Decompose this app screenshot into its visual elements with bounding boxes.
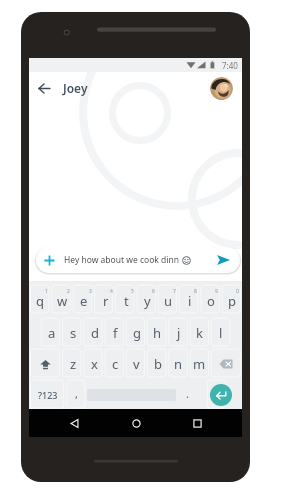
button[interactable]: Shift (29, 349, 62, 379)
button[interactable]: Recent apps (181, 409, 213, 437)
staticText: w (57, 292, 68, 310)
staticText: . (186, 386, 189, 401)
staticText: 7:40 (222, 60, 238, 71)
button[interactable]: l (210, 318, 231, 348)
staticText: y (144, 292, 151, 310)
button[interactable]: q (29, 285, 51, 315)
staticText: 1 (45, 288, 48, 295)
staticText: c (112, 355, 119, 373)
staticText: m (193, 355, 206, 373)
button[interactable]: Enter (210, 384, 232, 406)
button[interactable]: e (73, 285, 95, 315)
staticText: z (70, 355, 77, 373)
staticText: k (196, 324, 203, 342)
staticText: d (91, 324, 99, 342)
staticText: e (80, 292, 88, 310)
button[interactable]: k (189, 318, 210, 348)
staticText: ?123 (38, 389, 58, 401)
button[interactable]: n (168, 349, 189, 379)
staticText: , (75, 386, 78, 401)
staticText: s (70, 324, 77, 342)
button[interactable]: v (126, 349, 147, 379)
button[interactable]: z (62, 349, 84, 379)
button[interactable]: Backspace (210, 349, 242, 379)
staticText: q (36, 292, 44, 310)
staticText: o (207, 292, 215, 310)
button[interactable]: g (126, 318, 147, 348)
staticText: u (164, 292, 173, 310)
button[interactable]: y (137, 285, 158, 315)
staticText: 7 (173, 288, 176, 295)
staticText: 6 (152, 288, 155, 295)
staticText: f (113, 324, 118, 342)
staticText: 2 (67, 288, 70, 295)
button[interactable]: , (66, 380, 87, 410)
button[interactable]: Send (214, 251, 232, 269)
staticText: 3 (89, 288, 92, 295)
button[interactable]: c (105, 349, 126, 379)
button[interactable]: p (221, 285, 242, 315)
button[interactable]: b (147, 349, 168, 379)
staticText: Hey how about we cook dinn (64, 254, 179, 266)
staticText: v (133, 355, 140, 373)
button[interactable]: Back (34, 78, 54, 98)
staticText: x (91, 355, 98, 373)
staticText: Joey (63, 80, 88, 96)
staticText: 5 (131, 288, 134, 295)
button[interactable]: s (63, 318, 84, 348)
button[interactable]: h (147, 318, 168, 348)
staticText: g (133, 324, 141, 342)
button[interactable]: Hey how about we cook dinn (36, 247, 240, 273)
button[interactable]: d (84, 318, 105, 348)
staticText: p (228, 292, 236, 310)
staticText: l (219, 324, 223, 342)
button[interactable]: m (189, 349, 210, 379)
button[interactable]: w (51, 285, 73, 315)
button[interactable]: . (176, 380, 199, 410)
staticText: t (124, 292, 129, 310)
button[interactable]: f (105, 318, 126, 348)
button[interactable]: t (116, 285, 137, 315)
button[interactable]: Profile photo (210, 77, 233, 100)
staticText: i (188, 292, 192, 310)
staticText: 0 (236, 288, 239, 295)
button[interactable]: o (200, 285, 221, 315)
button[interactable]: j (168, 318, 189, 348)
staticText: n (174, 355, 183, 373)
button[interactable]: r (95, 285, 116, 315)
staticText: a (48, 324, 56, 342)
staticText: 8 (194, 288, 197, 295)
button[interactable]: Home (120, 409, 152, 437)
staticText: j (177, 324, 181, 342)
staticText: r (103, 292, 109, 310)
button[interactable]: u (158, 285, 179, 315)
staticText: 9 (215, 288, 218, 295)
button[interactable]: a (41, 318, 63, 348)
button[interactable]: ?123 (29, 380, 66, 410)
staticText: b (154, 355, 162, 373)
button[interactable]: Back (58, 409, 90, 437)
staticText: h (153, 324, 162, 342)
staticText: 4 (110, 288, 113, 295)
button[interactable]: x (84, 349, 105, 379)
button[interactable]: i (179, 285, 200, 315)
